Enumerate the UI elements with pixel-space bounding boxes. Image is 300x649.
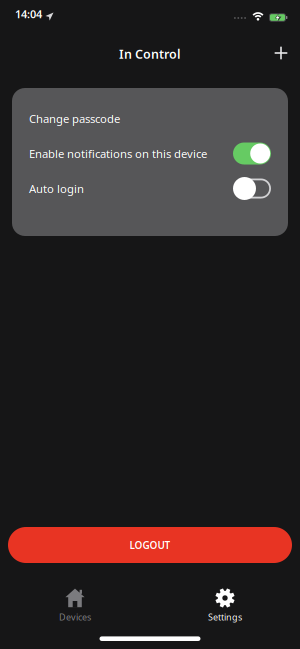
staticText: Auto login xyxy=(29,181,84,196)
button[interactable]: Enable notifications on this device xyxy=(233,142,271,165)
staticText: Enable notifications on this device xyxy=(29,146,207,161)
button[interactable]: Change passcode xyxy=(12,101,288,136)
staticText: In Control xyxy=(119,46,181,62)
staticText: LOGOUT xyxy=(129,538,170,552)
button[interactable]: Devices xyxy=(0,588,150,623)
button[interactable]: Settings xyxy=(150,588,300,623)
button[interactable]: Auto login xyxy=(233,177,271,200)
staticText: Devices xyxy=(59,611,91,623)
button[interactable]: LOGOUT xyxy=(8,527,292,563)
button[interactable]: Add xyxy=(274,47,300,61)
staticText: Change passcode xyxy=(29,111,120,126)
staticText: Settings xyxy=(208,611,242,623)
staticText: 14:04 xyxy=(15,7,42,21)
